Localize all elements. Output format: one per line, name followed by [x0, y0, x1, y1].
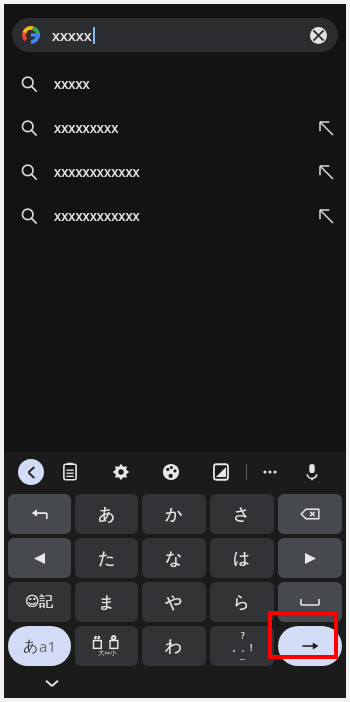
staticText: …	[240, 653, 246, 663]
button[interactable]: enter	[278, 626, 342, 666]
staticText: な	[165, 548, 183, 569]
staticText: わ	[165, 636, 183, 657]
button[interactable]: ☺記	[8, 582, 71, 622]
button[interactable]: ま	[75, 582, 138, 622]
button[interactable]: space	[278, 582, 342, 622]
button[interactable]: か	[142, 494, 206, 534]
button[interactable]: dakuten	[75, 626, 138, 666]
button[interactable]: undo	[8, 494, 71, 534]
button[interactable]: Settings	[95, 452, 146, 492]
button[interactable]: Voice input	[292, 452, 332, 492]
staticText: や	[165, 592, 183, 613]
button[interactable]: や	[142, 582, 206, 622]
staticText: xxxxxxxxxxxx	[54, 207, 140, 225]
staticText: xxxxxxxxxxxx	[54, 163, 140, 181]
staticText: さ	[233, 504, 251, 525]
button[interactable]: Hide keyboard	[40, 671, 64, 695]
button[interactable]: た	[75, 538, 138, 578]
staticText: ?	[241, 630, 245, 641]
button[interactable]: More	[247, 452, 292, 492]
button[interactable]: あ	[75, 494, 138, 534]
button[interactable]: left	[8, 538, 71, 578]
button[interactable]: Clear	[308, 25, 328, 45]
button[interactable]: あ	[8, 626, 71, 666]
button[interactable]: Themes	[146, 452, 196, 492]
button[interactable]: right	[278, 538, 342, 578]
button[interactable]: xxxxxxxxxxxx	[4, 150, 346, 194]
button[interactable]: は	[210, 538, 274, 578]
staticText: 。、!	[232, 641, 253, 653]
staticText: あ	[23, 637, 39, 656]
button[interactable]: punct	[210, 626, 274, 666]
button[interactable]: xxxxx	[12, 18, 338, 52]
button[interactable]: Clipboard	[44, 452, 95, 492]
button[interactable]: わ	[142, 626, 206, 666]
staticText: か	[165, 504, 183, 525]
staticText: xxxxx	[54, 75, 90, 93]
button[interactable]: な	[142, 538, 206, 578]
staticText: xxxxx	[52, 25, 92, 45]
button[interactable]: Back	[18, 459, 44, 485]
staticText: た	[98, 548, 116, 569]
staticText: a1	[39, 636, 56, 656]
button[interactable]: Resize	[196, 452, 246, 492]
staticText: ま	[98, 592, 116, 613]
button[interactable]: ら	[210, 582, 274, 622]
button[interactable]: xxxxxxxxxxxx	[4, 194, 346, 238]
staticText: xxxxxxxxx	[54, 119, 119, 137]
button[interactable]: さ	[210, 494, 274, 534]
staticText: ら	[233, 592, 251, 613]
button[interactable]: bksp	[278, 494, 342, 534]
staticText: あ	[98, 504, 116, 525]
button[interactable]: xxxxx	[4, 62, 346, 106]
staticText: は	[233, 548, 251, 569]
button[interactable]: xxxxxxxxx	[4, 106, 346, 150]
staticText: 大⇔小	[98, 649, 117, 657]
staticText: ☺記	[25, 593, 54, 611]
